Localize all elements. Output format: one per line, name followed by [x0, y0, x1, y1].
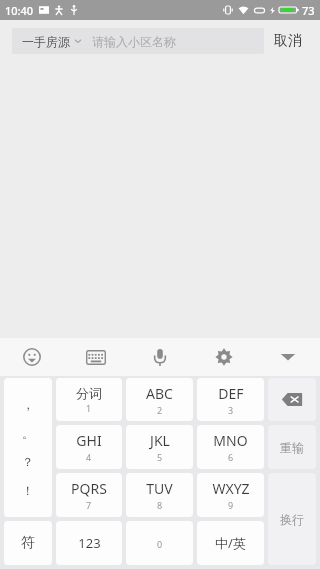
- staticText: 取消: [274, 32, 302, 50]
- button[interactable]: 中/英: [197, 521, 264, 565]
- button[interactable]: 一手房源: [12, 28, 264, 54]
- staticText: 7: [86, 499, 92, 511]
- button[interactable]: ABC: [126, 378, 193, 421]
- staticText: GHI: [76, 431, 102, 450]
- staticText: 一手房源: [22, 34, 70, 49]
- button[interactable]: TUV: [126, 473, 193, 517]
- button[interactable]: Emoji: [0, 338, 64, 376]
- staticText: ABC: [146, 384, 173, 403]
- staticText: WXYZ: [212, 479, 250, 498]
- button[interactable]: 分词: [56, 378, 122, 421]
- button[interactable]: 符: [4, 521, 52, 565]
- staticText: 请输入小区名称: [92, 34, 176, 49]
- staticText: 中/英: [215, 534, 246, 552]
- button[interactable]: Backspace: [268, 378, 316, 421]
- staticText: 73: [302, 3, 315, 18]
- button[interactable]: 取消: [264, 26, 312, 56]
- staticText: 分词: [76, 385, 102, 401]
- staticText: 4: [86, 451, 92, 463]
- staticText: 10:40: [5, 3, 34, 18]
- button[interactable]: GHI: [56, 425, 122, 469]
- button[interactable]: 换行: [268, 473, 316, 565]
- staticText: 9: [228, 499, 234, 511]
- staticText: 符: [21, 534, 35, 552]
- staticText: 123: [78, 534, 101, 552]
- button[interactable]: Keyboard layout: [64, 338, 128, 376]
- staticText: 8: [157, 499, 163, 511]
- staticText: MNO: [213, 431, 248, 450]
- staticText: 0: [157, 538, 163, 550]
- staticText: JKL: [150, 431, 170, 450]
- staticText: 2: [157, 404, 163, 416]
- button[interactable]: 0: [126, 521, 193, 565]
- button[interactable]: ，: [4, 378, 52, 517]
- button[interactable]: DEF: [197, 378, 264, 421]
- staticText: DEF: [218, 384, 244, 403]
- staticText: 5: [157, 451, 163, 463]
- staticText: ，: [22, 397, 34, 412]
- button[interactable]: PQRS: [56, 473, 122, 517]
- staticText: ？: [22, 454, 34, 469]
- button[interactable]: Hide keyboard: [256, 338, 320, 376]
- staticText: 换行: [280, 512, 304, 527]
- staticText: 。: [22, 426, 34, 441]
- staticText: PQRS: [71, 479, 107, 498]
- staticText: 1: [86, 402, 92, 414]
- button[interactable]: 重输: [268, 425, 316, 469]
- staticText: ！: [22, 483, 34, 498]
- button[interactable]: 123: [56, 521, 122, 565]
- staticText: 3: [228, 404, 234, 416]
- staticText: 重输: [280, 440, 304, 455]
- staticText: TUV: [146, 479, 173, 498]
- button[interactable]: WXYZ: [197, 473, 264, 517]
- button[interactable]: Voice input: [128, 338, 192, 376]
- button[interactable]: Settings: [192, 338, 256, 376]
- button[interactable]: MNO: [197, 425, 264, 469]
- button[interactable]: JKL: [126, 425, 193, 469]
- staticText: 6: [228, 451, 234, 463]
